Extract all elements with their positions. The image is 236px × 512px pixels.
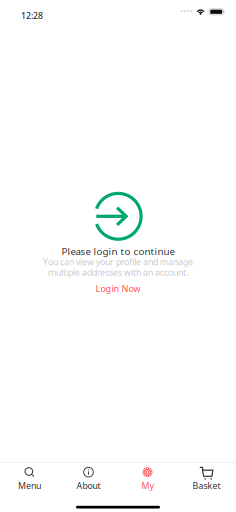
button[interactable]: About <box>59 463 118 498</box>
button[interactable]: Login Now <box>95 282 140 295</box>
button[interactable]: Basket <box>177 463 236 498</box>
staticText: Login Now <box>95 282 140 295</box>
staticText: Menu <box>18 480 41 492</box>
staticText: 12:28 <box>21 9 43 21</box>
staticText: My <box>141 480 153 492</box>
staticText: Basket <box>192 480 220 492</box>
staticText: Please login to continue <box>61 245 174 258</box>
staticText: About <box>76 480 100 492</box>
staticText: multiple addresses with an account. <box>48 266 188 278</box>
staticText: You can view your profile and manage <box>43 256 193 268</box>
button[interactable]: My <box>118 463 177 498</box>
button[interactable]: Menu <box>0 463 59 498</box>
